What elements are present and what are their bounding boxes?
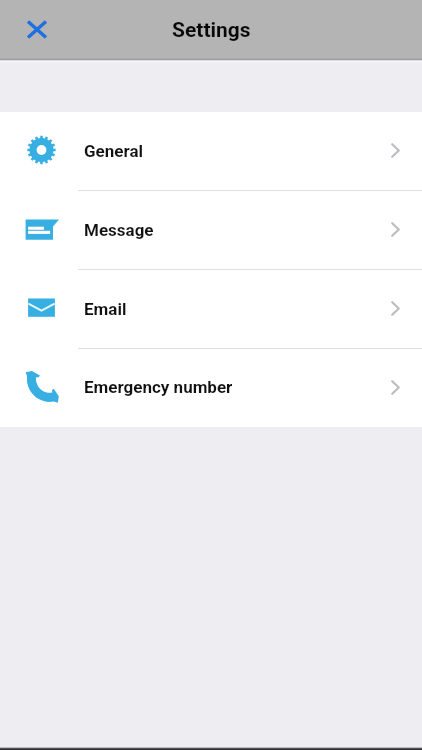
staticText: General [84, 141, 144, 161]
staticText: Settings [172, 18, 251, 43]
button[interactable]: Close [17, 9, 57, 49]
staticText: Message [84, 220, 154, 240]
button[interactable]: Emergency number [0, 349, 422, 427]
button[interactable]: General [0, 112, 422, 191]
staticText: Emergency number [84, 377, 233, 397]
button[interactable]: Message [0, 191, 422, 270]
staticText: Email [84, 299, 127, 319]
button[interactable]: Email [0, 270, 422, 349]
